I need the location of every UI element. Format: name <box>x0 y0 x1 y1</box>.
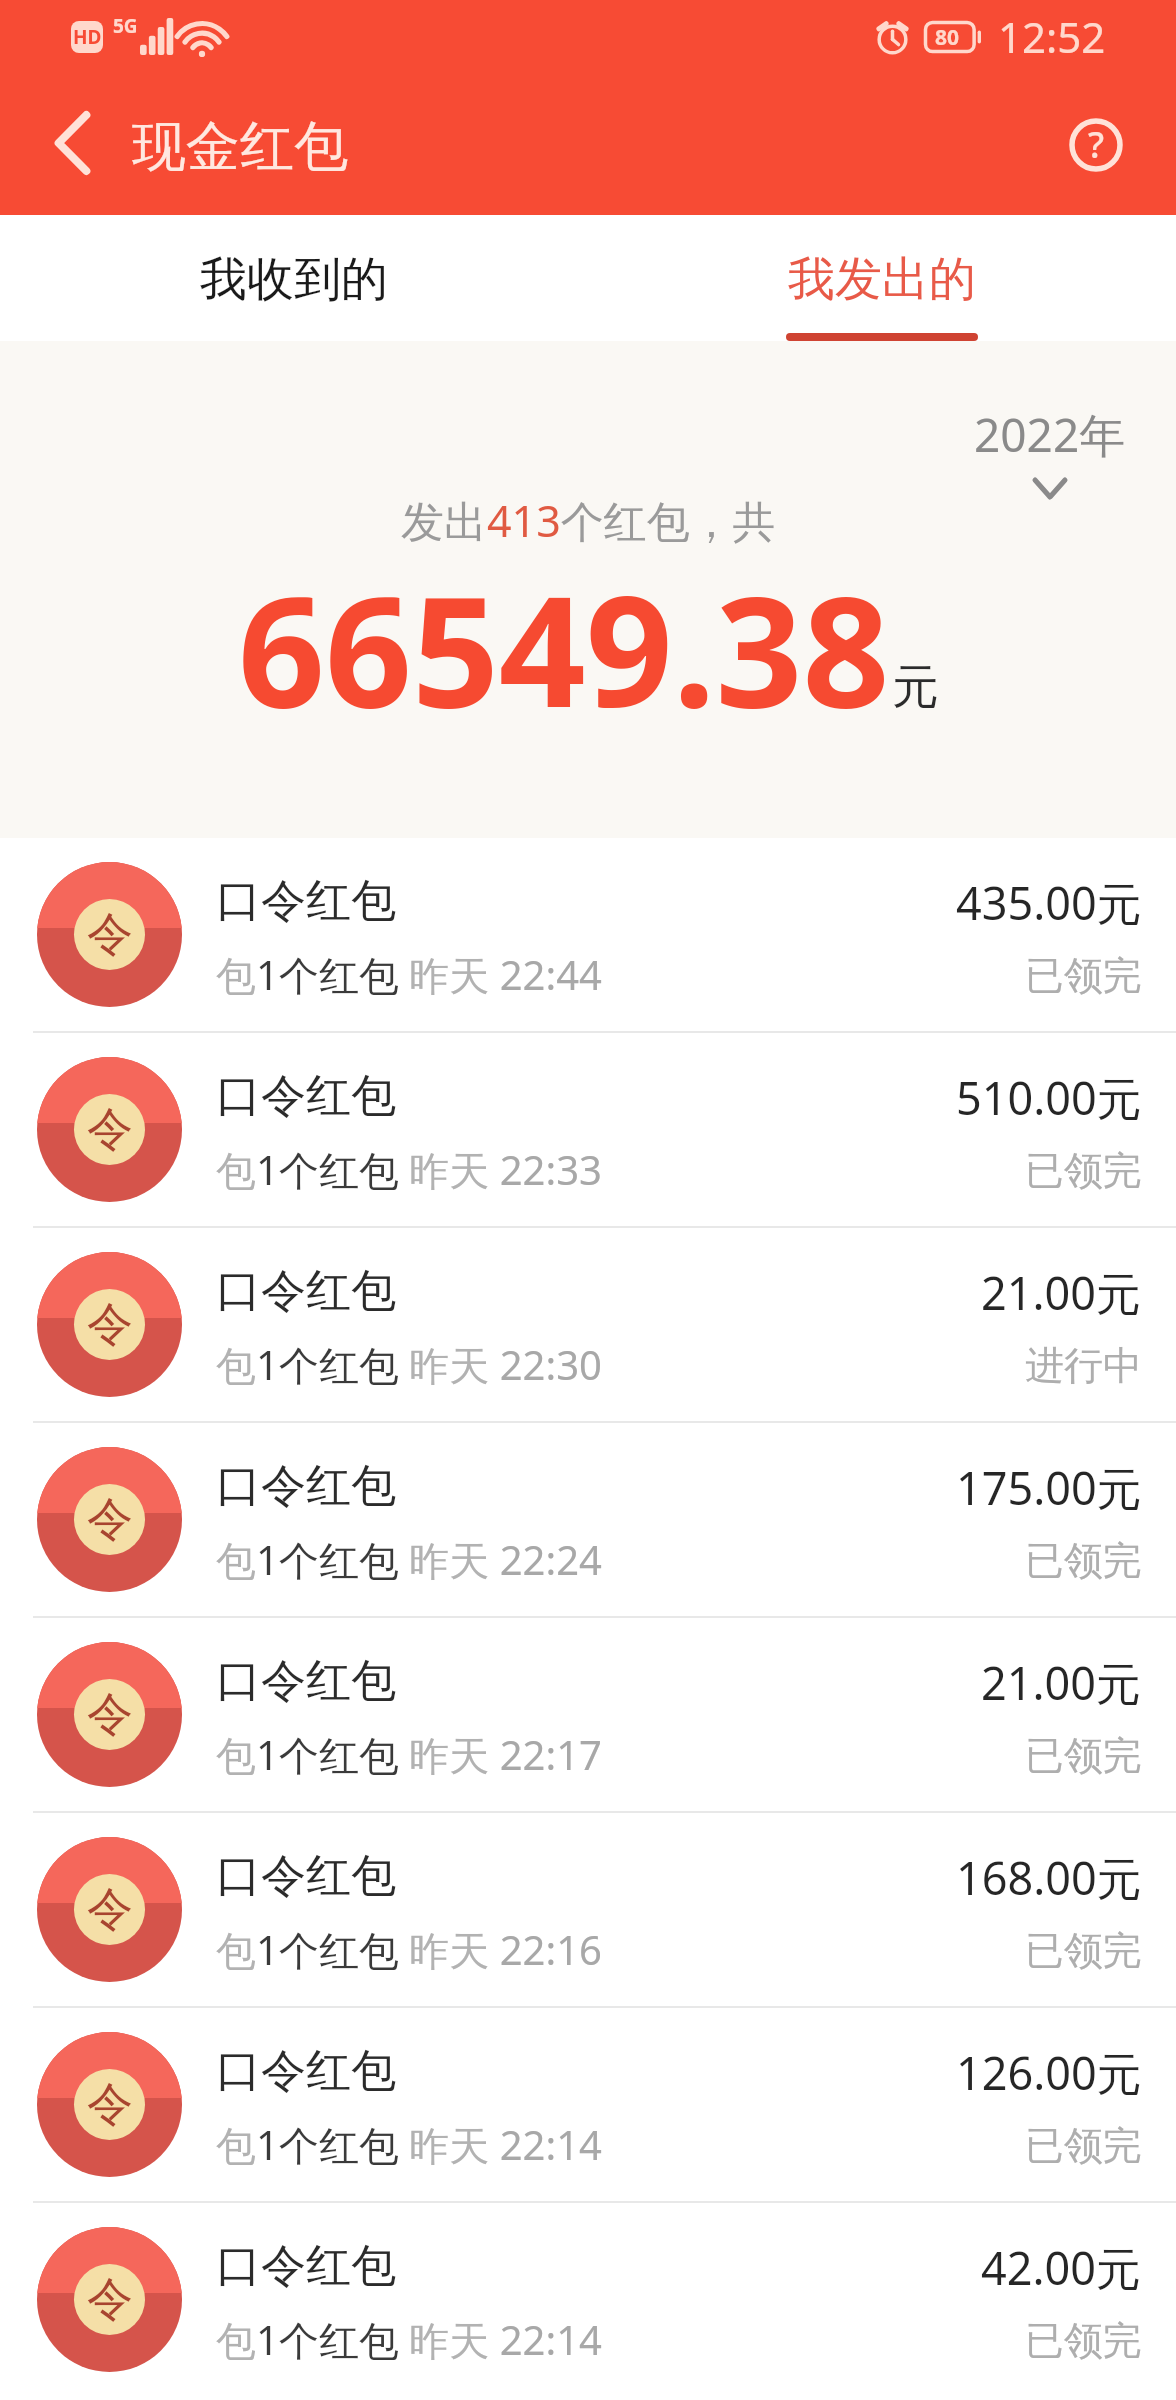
staticText: 我发出的 <box>788 250 976 309</box>
staticText: 令 <box>87 1101 133 1159</box>
staticText: 已领完 <box>1025 2121 1142 2170</box>
staticText: 175.00元 <box>956 1457 1142 1518</box>
staticText: HD <box>73 24 102 50</box>
button[interactable]: Help <box>1068 117 1124 173</box>
staticText: 包1个红包 昨天 22:16 <box>216 1922 602 1977</box>
staticText: 令 <box>87 1881 133 1939</box>
staticText: 令 <box>87 906 133 964</box>
staticText: 80 <box>935 23 960 52</box>
staticText: 元 <box>892 658 939 717</box>
staticText: 已领完 <box>1025 1731 1142 1780</box>
staticText: 口令红包 <box>216 1068 396 1125</box>
staticText: 口令红包 <box>216 2043 396 2100</box>
staticText: 21.00元 <box>981 1262 1142 1323</box>
staticText: 包1个红包 昨天 22:17 <box>216 1727 602 1782</box>
staticText: 已领完 <box>1025 1926 1142 1975</box>
staticText: 包1个红包 昨天 22:44 <box>216 947 602 1002</box>
staticText: 21.00元 <box>981 1652 1142 1713</box>
staticText: 口令红包 <box>216 2238 396 2295</box>
staticText: 我收到的 <box>200 250 388 309</box>
staticText: 现金红包 <box>132 113 348 181</box>
staticText: 进行中 <box>1025 1341 1142 1390</box>
staticText: 12:52 <box>998 8 1106 65</box>
button[interactable]: 我收到的 <box>0 215 588 341</box>
button[interactable]: 令 <box>0 1813 1176 2006</box>
staticText: 已领完 <box>1025 1146 1142 1195</box>
staticText: 令 <box>87 1491 133 1549</box>
staticText: 口令红包 <box>216 1848 396 1905</box>
staticText: 42.00元 <box>981 2237 1142 2298</box>
staticText: 口令红包 <box>216 1263 396 1320</box>
button[interactable]: Back <box>0 78 132 215</box>
staticText: 包1个红包 昨天 22:30 <box>216 1337 602 1392</box>
staticText: 口令红包 <box>216 1458 396 1515</box>
staticText: 已领完 <box>1025 1536 1142 1585</box>
staticText: 510.00元 <box>956 1067 1142 1128</box>
button[interactable]: 我发出的 <box>588 215 1176 341</box>
staticText: 令 <box>87 1686 133 1744</box>
staticText: 包1个红包 昨天 22:33 <box>216 1142 602 1197</box>
staticText: 口令红包 <box>216 1653 396 1710</box>
staticText: 已领完 <box>1025 2316 1142 2365</box>
staticText: 口令红包 <box>216 873 396 930</box>
staticText: 66549.38 <box>238 545 890 752</box>
button[interactable]: 令 <box>0 1033 1176 1226</box>
button[interactable]: 令 <box>0 2203 1176 2396</box>
button[interactable]: 令 <box>0 2008 1176 2201</box>
staticText: 发出413个红包，共 <box>401 491 776 550</box>
staticText: 126.00元 <box>956 2042 1142 2103</box>
staticText: 435.00元 <box>956 872 1142 933</box>
staticText: 令 <box>87 2076 133 2134</box>
staticText: 包1个红包 昨天 22:14 <box>216 2312 602 2367</box>
button[interactable]: 令 <box>0 838 1176 1031</box>
button[interactable]: 令 <box>0 1228 1176 1421</box>
staticText: 168.00元 <box>956 1847 1142 1908</box>
staticText: ? <box>1088 120 1105 169</box>
button[interactable]: 令 <box>0 1423 1176 1616</box>
button[interactable]: 令 <box>0 1618 1176 1811</box>
staticText: 已领完 <box>1025 951 1142 1000</box>
button[interactable]: 2022年 <box>974 403 1126 497</box>
staticText: 令 <box>87 2271 133 2329</box>
staticText: 5G <box>113 13 138 39</box>
staticText: 包1个红包 昨天 22:24 <box>216 1532 602 1587</box>
staticText: 2022年 <box>974 403 1126 466</box>
staticText: 令 <box>87 1296 133 1354</box>
staticText: 包1个红包 昨天 22:14 <box>216 2117 602 2172</box>
